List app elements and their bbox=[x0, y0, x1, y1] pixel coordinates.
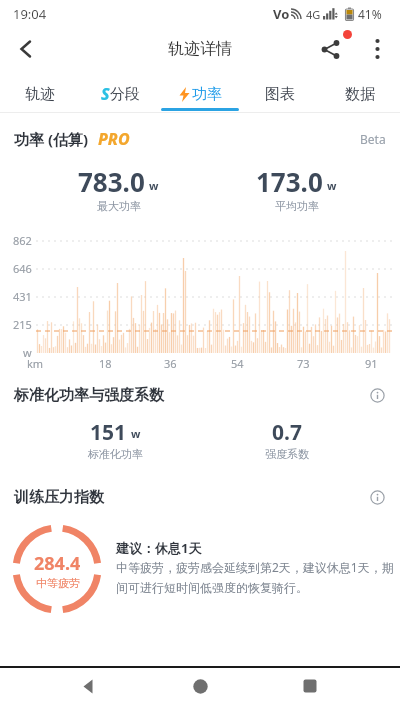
staticText: w bbox=[149, 178, 159, 193]
staticText: km bbox=[27, 356, 44, 371]
staticText: 轨迹详情 bbox=[168, 39, 232, 59]
button[interactable] bbox=[184, 670, 216, 702]
staticText: 分段 bbox=[110, 85, 140, 104]
staticText: 862 bbox=[13, 233, 32, 248]
staticText: 功率 bbox=[192, 85, 222, 104]
staticText: 18 bbox=[99, 356, 112, 371]
button[interactable] bbox=[367, 487, 387, 507]
button[interactable]: 图表 bbox=[240, 70, 320, 112]
staticText: 轨迹 bbox=[25, 85, 55, 104]
staticText: 173.0 bbox=[256, 164, 323, 199]
button[interactable] bbox=[294, 670, 326, 702]
staticText: 19:04 bbox=[13, 5, 47, 23]
staticText: 建议：休息1天 bbox=[116, 539, 202, 557]
staticText: 标准化功率与强度系数 bbox=[14, 386, 164, 405]
staticText: 284.4 bbox=[34, 551, 81, 576]
staticText: Beta bbox=[360, 131, 386, 147]
staticText: 646 bbox=[13, 261, 32, 276]
button[interactable]: 轨迹 bbox=[0, 70, 80, 112]
staticText: PRO bbox=[98, 128, 130, 150]
staticText: 36 bbox=[164, 356, 177, 371]
staticText: 训练压力指数 bbox=[14, 488, 104, 507]
staticText: 54 bbox=[231, 356, 244, 371]
staticText: Vo bbox=[273, 5, 290, 23]
staticText: w bbox=[23, 345, 32, 360]
button[interactable] bbox=[310, 29, 350, 69]
staticText: 91 bbox=[365, 356, 378, 371]
staticText: 215 bbox=[13, 317, 32, 332]
staticText: w bbox=[131, 426, 141, 441]
staticText: 151 bbox=[90, 418, 127, 447]
staticText: 0.7 bbox=[272, 418, 302, 447]
staticText: 平均功率 bbox=[275, 199, 319, 213]
staticText: 数据 bbox=[345, 85, 375, 104]
staticText: 4G bbox=[306, 7, 321, 22]
staticText: 强度系数 bbox=[265, 447, 309, 461]
button[interactable] bbox=[72, 670, 104, 702]
staticText: 73 bbox=[297, 356, 310, 371]
button[interactable]: 功率 bbox=[160, 70, 240, 112]
button[interactable] bbox=[367, 385, 387, 405]
staticText: 41% bbox=[358, 6, 382, 22]
staticText: 中等疲劳 bbox=[36, 576, 80, 590]
staticText: w bbox=[327, 178, 337, 193]
staticText: S bbox=[101, 83, 110, 105]
staticText: 功率 (估算) bbox=[14, 129, 89, 149]
staticText: 783.0 bbox=[78, 164, 145, 199]
button[interactable] bbox=[8, 31, 44, 67]
button[interactable]: S bbox=[80, 70, 160, 112]
staticText: 标准化功率 bbox=[88, 447, 143, 461]
staticText: 中等疲劳，疲劳感会延续到第2天，建议休息1天，期 间可进行短时间低强度的恢复骑行… bbox=[116, 559, 394, 595]
staticText: 最大功率 bbox=[97, 199, 141, 213]
button[interactable] bbox=[362, 29, 392, 69]
staticText: 431 bbox=[13, 289, 32, 304]
button[interactable]: 数据 bbox=[320, 70, 400, 112]
staticText: 图表 bbox=[265, 85, 295, 104]
